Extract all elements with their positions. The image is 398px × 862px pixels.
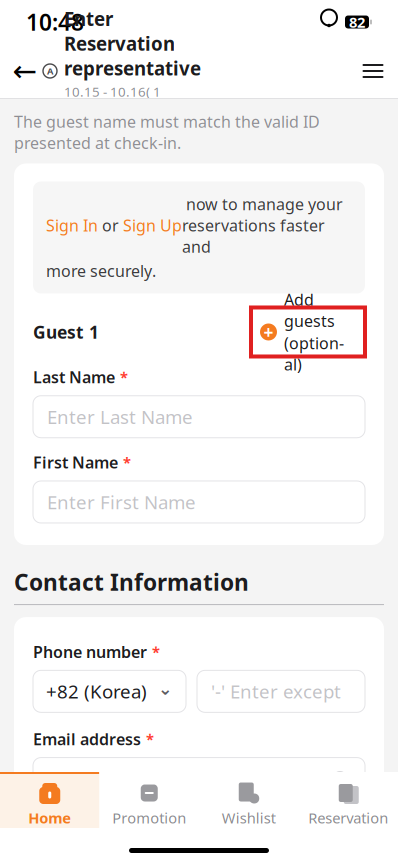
staticText: Email address	[33, 728, 141, 749]
button[interactable]: Menu	[356, 51, 390, 91]
button[interactable]: Clear email address	[329, 768, 351, 790]
staticText: now to manage your reservations faster a…	[182, 193, 343, 257]
staticText: ⌄	[158, 679, 173, 699]
button[interactable]: Back	[8, 51, 42, 91]
staticText: Contact Information	[14, 567, 249, 597]
staticText: Add guests	[284, 289, 335, 331]
staticText: ✕	[335, 772, 344, 785]
staticText: *	[146, 729, 154, 749]
button[interactable]: Sign Up	[123, 215, 182, 236]
staticText: The guest name must match the valid ID p…	[14, 111, 320, 153]
staticText: Enter Reservation representative	[64, 6, 201, 81]
staticText: Wishlist	[222, 808, 276, 827]
staticText: Enter First Name	[47, 490, 196, 514]
button[interactable]: Sign In	[46, 215, 98, 236]
staticText: or	[98, 215, 123, 236]
button[interactable]: Promotion	[99, 772, 199, 828]
staticText: Hi Tracy, thanks for visiting again!	[46, 828, 300, 849]
button[interactable]: Enter Last Name	[33, 396, 365, 438]
staticText: Sign In	[46, 215, 98, 236]
staticText: Enter Last Name	[47, 404, 193, 429]
button[interactable]: +82 (Korea)	[33, 670, 186, 712]
staticText: *	[123, 453, 131, 472]
staticText: Promotion	[112, 808, 186, 827]
button[interactable]: Home	[0, 772, 99, 828]
staticText: A	[47, 65, 53, 77]
staticText: *	[152, 642, 160, 661]
staticText: Guest 1	[33, 320, 99, 343]
staticText: (optional)	[284, 332, 344, 375]
button[interactable]: +	[251, 307, 365, 356]
staticText: Reservation	[308, 808, 388, 827]
staticText: more securely.	[46, 260, 156, 281]
button[interactable]: Reservation	[298, 772, 398, 828]
staticText: Last Name	[33, 366, 115, 388]
staticText: 10:48	[26, 7, 84, 37]
staticText: +	[263, 320, 273, 343]
staticText: Sign Up	[123, 215, 182, 236]
staticText: First Name	[33, 452, 118, 473]
staticText: tuyen@vomoto.com	[47, 766, 224, 791]
staticText: +82 (Korea)	[46, 679, 147, 704]
button[interactable]: Wishlist	[199, 772, 298, 828]
staticText: 82	[349, 12, 365, 32]
staticText: 10.15 - 10.16( 1 nights), 1 rooms, 2 adu…	[64, 83, 178, 136]
staticText: Phone number	[33, 641, 147, 662]
button[interactable]: Enter First Name	[33, 481, 365, 523]
staticText: *	[120, 367, 128, 387]
staticText: Home	[28, 808, 71, 827]
staticText: ←	[12, 54, 37, 88]
staticText: '-' Enter except	[211, 679, 341, 704]
button[interactable]: '-' Enter except	[197, 670, 365, 712]
